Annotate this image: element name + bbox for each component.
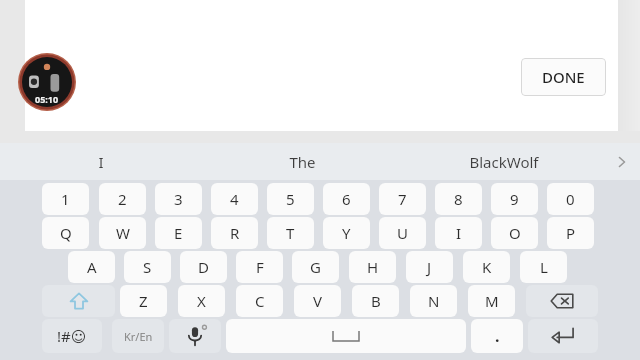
button[interactable]: E	[155, 217, 202, 249]
staticText: 7	[398, 189, 407, 209]
staticText: .	[495, 325, 500, 347]
button[interactable]: K	[463, 251, 510, 283]
staticText: X	[197, 291, 206, 311]
button[interactable]: 2	[99, 183, 146, 215]
staticText: U	[397, 223, 408, 243]
button[interactable]: 4	[211, 183, 258, 215]
staticText: 8	[454, 189, 463, 209]
staticText: E	[174, 223, 183, 243]
button[interactable]: T	[267, 217, 314, 249]
button[interactable]: F	[236, 251, 283, 283]
staticText: 0	[566, 189, 575, 209]
staticText: P	[566, 223, 576, 243]
button[interactable]: Q	[42, 217, 89, 249]
button[interactable]: W	[99, 217, 146, 249]
staticText: 3	[174, 189, 183, 209]
staticText: O	[509, 223, 521, 243]
button[interactable]: I	[0, 143, 202, 180]
button[interactable]: BlackWolf	[403, 143, 604, 180]
staticText: H	[367, 257, 379, 277]
staticText: Z	[139, 291, 148, 311]
button[interactable]: X	[178, 285, 225, 317]
button[interactable]: D	[180, 251, 227, 283]
staticText: W	[116, 223, 130, 243]
button[interactable]: Y	[323, 217, 370, 249]
staticText: G	[310, 257, 321, 277]
button[interactable]: A	[68, 251, 115, 283]
button[interactable]: Shift	[42, 285, 115, 317]
staticText: DONE	[542, 67, 585, 87]
button[interactable]: S	[124, 251, 171, 283]
button[interactable]: V	[294, 285, 341, 317]
staticText: J	[427, 257, 432, 277]
button[interactable]: G	[292, 251, 339, 283]
button[interactable]: 0	[547, 183, 594, 215]
button[interactable]: P	[547, 217, 594, 249]
button[interactable]: J	[406, 251, 453, 283]
staticText: Y	[342, 223, 351, 243]
staticText: 6	[342, 189, 351, 209]
button[interactable]: 8	[435, 183, 482, 215]
staticText: 9	[510, 189, 519, 209]
button[interactable]: .	[471, 319, 523, 353]
staticText: 05:10	[35, 93, 59, 105]
staticText: I	[456, 223, 462, 243]
button[interactable]: N	[410, 285, 457, 317]
button[interactable]: 7	[379, 183, 426, 215]
staticText: !#☺	[57, 326, 87, 346]
button[interactable]: 9	[491, 183, 538, 215]
button[interactable]: U	[379, 217, 426, 249]
button[interactable]: 5	[267, 183, 314, 215]
staticText: K	[482, 257, 492, 277]
button[interactable]: The	[202, 143, 403, 180]
button[interactable]: M	[468, 285, 515, 317]
staticText: 2	[118, 189, 127, 209]
button[interactable]: L	[520, 251, 567, 283]
staticText: 1	[61, 189, 70, 209]
button[interactable]: More suggestions	[604, 143, 640, 180]
button[interactable]: 3	[155, 183, 202, 215]
staticText: F	[256, 257, 264, 277]
staticText: S	[143, 257, 152, 277]
staticText: N	[428, 291, 440, 311]
staticText: 5	[286, 189, 295, 209]
staticText: V	[313, 291, 323, 311]
button[interactable]: C	[236, 285, 283, 317]
staticText: Q	[60, 223, 72, 243]
staticText: I	[98, 152, 104, 172]
staticText: A	[87, 257, 97, 277]
button[interactable]: Backspace	[526, 285, 598, 317]
button[interactable]: Watch face preview	[18, 53, 76, 111]
staticText: The	[289, 152, 316, 172]
button[interactable]: I	[435, 217, 482, 249]
staticText: L	[540, 257, 548, 277]
staticText: T	[286, 223, 295, 243]
button[interactable]: Language	[112, 319, 164, 353]
button[interactable]: 1	[42, 183, 89, 215]
staticText: D	[198, 257, 209, 277]
button[interactable]: Enter	[528, 319, 598, 353]
staticText: 4	[230, 189, 239, 209]
staticText: B	[371, 291, 381, 311]
staticText: Kr/En	[124, 329, 153, 344]
staticText: M	[485, 291, 499, 311]
button[interactable]: !#☺	[42, 319, 102, 353]
button[interactable]: DONE	[521, 58, 606, 96]
button[interactable]: H	[349, 251, 396, 283]
button[interactable]: O	[491, 217, 538, 249]
button[interactable]: Space	[226, 319, 466, 353]
button[interactable]: R	[211, 217, 258, 249]
button[interactable]: Z	[120, 285, 167, 317]
button[interactable]: B	[352, 285, 399, 317]
staticText: C	[255, 291, 265, 311]
button[interactable]: 6	[323, 183, 370, 215]
staticText: BlackWolf	[469, 152, 539, 172]
button[interactable]: Voice input	[169, 319, 221, 353]
staticText: R	[230, 223, 240, 243]
